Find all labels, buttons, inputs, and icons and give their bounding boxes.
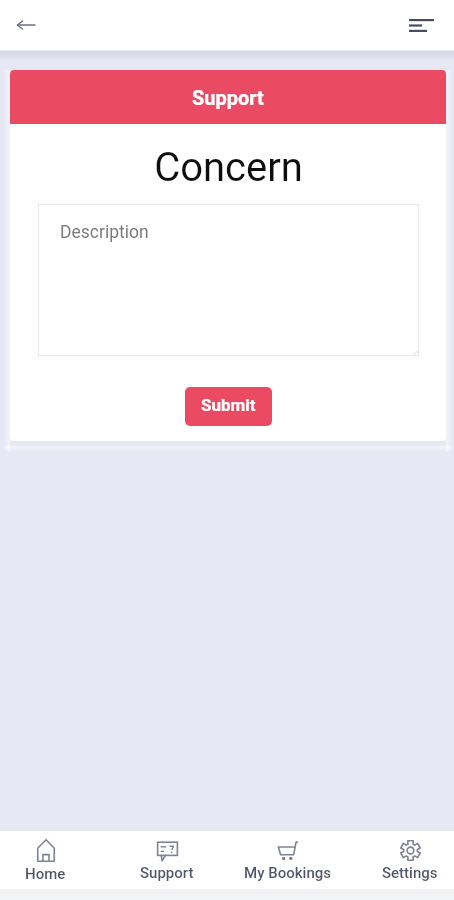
staticText: Description — [60, 222, 149, 243]
staticText: Support — [140, 864, 194, 882]
button[interactable]: Description — [38, 204, 419, 356]
staticText: My Bookings — [244, 864, 331, 882]
button[interactable]: Back — [8, 7, 44, 43]
staticText: Home — [25, 865, 66, 883]
button[interactable]: Home — [0, 831, 101, 889]
staticText: Submit — [201, 395, 256, 415]
button[interactable]: Submit — [185, 387, 272, 426]
button[interactable]: Menu — [404, 8, 438, 42]
button[interactable]: Settings — [354, 831, 454, 889]
staticText: Settings — [382, 864, 438, 882]
staticText: Support — [192, 86, 264, 109]
staticText: Concern — [154, 144, 303, 191]
button[interactable]: My Bookings — [231, 831, 343, 889]
button[interactable]: Support — [111, 831, 223, 889]
